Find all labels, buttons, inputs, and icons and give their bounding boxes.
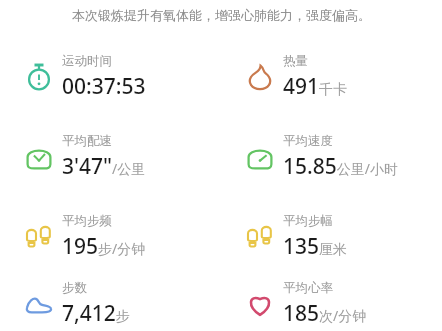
other: 步数 xyxy=(24,289,54,319)
staticText: 平均配速 xyxy=(62,133,112,149)
other: 平均步幅 xyxy=(245,222,275,252)
button[interactable]: 平均步频 xyxy=(0,197,221,277)
staticText: 3'47"/公里 xyxy=(62,152,146,181)
button[interactable]: 平均速度 xyxy=(221,117,442,197)
other: 平均速度 xyxy=(245,142,275,172)
staticText: 平均心率 xyxy=(283,280,333,296)
staticText: 491千卡 xyxy=(283,72,348,101)
staticText: 本次锻炼提升有氧体能，增强心肺能力，强度偏高。 xyxy=(72,7,371,23)
other: 热量 xyxy=(245,62,275,92)
staticText: 平均速度 xyxy=(283,133,333,149)
staticText: 135厘米 xyxy=(283,232,348,261)
button[interactable]: 热量 xyxy=(221,37,442,117)
staticText: 平均步幅 xyxy=(283,213,333,229)
button[interactable]: 平均步幅 xyxy=(221,197,442,277)
staticText: 185次/分钟 xyxy=(283,299,367,328)
other: 运动时间 xyxy=(24,62,54,92)
button[interactable]: 步数 xyxy=(0,277,221,331)
other: 平均配速 xyxy=(24,142,54,172)
button[interactable]: 运动时间 xyxy=(0,37,221,117)
staticText: 7,412步 xyxy=(62,299,130,328)
staticText: 热量 xyxy=(283,53,308,69)
other: 平均步频 xyxy=(24,222,54,252)
staticText: 195步/分钟 xyxy=(62,232,146,261)
staticText: 15.85公里/小时 xyxy=(283,152,398,181)
staticText: 平均步频 xyxy=(62,213,112,229)
staticText: 步数 xyxy=(62,280,87,296)
button[interactable]: 平均配速 xyxy=(0,117,221,197)
staticText: 运动时间 xyxy=(62,53,112,69)
button[interactable]: 平均心率 xyxy=(221,277,442,331)
staticText: 00:37:53 xyxy=(62,72,146,101)
other: 平均心率 xyxy=(245,289,275,319)
